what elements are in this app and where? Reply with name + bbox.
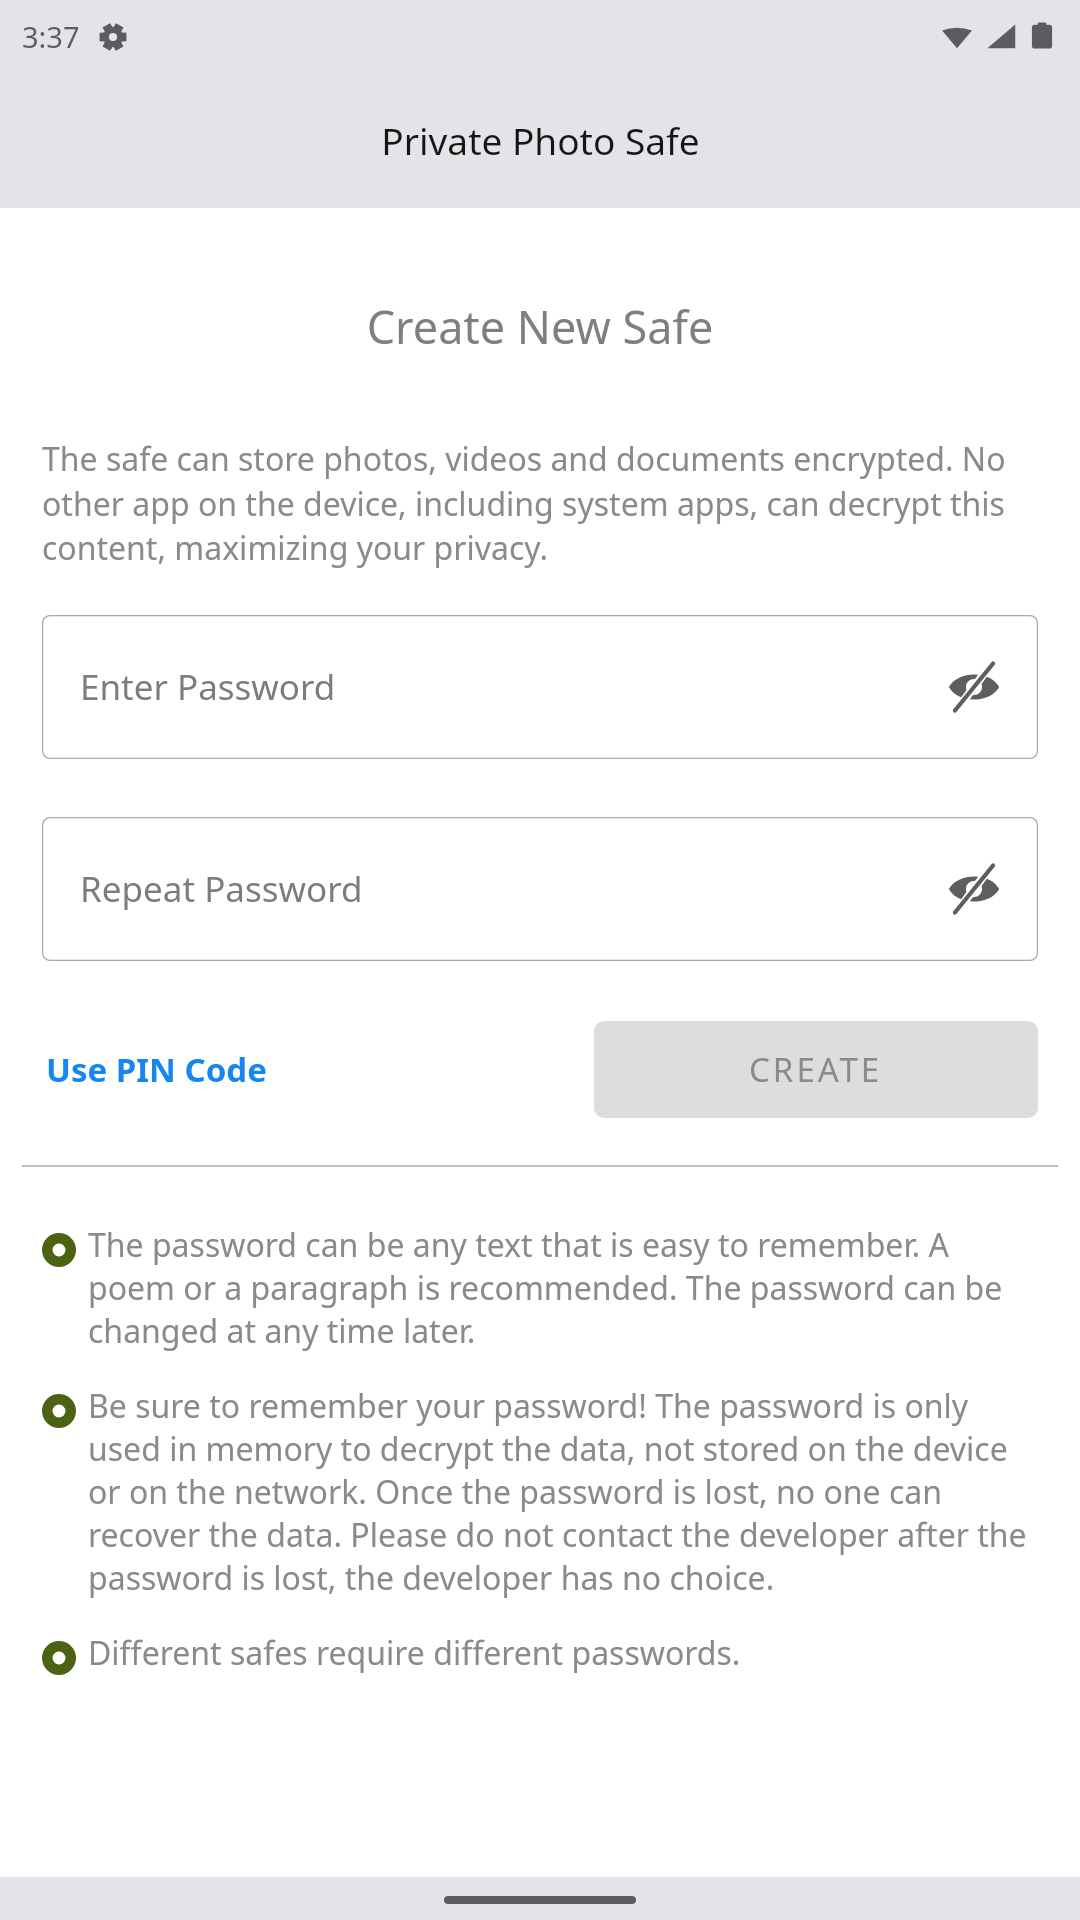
staticText: Repeat Password xyxy=(80,865,363,913)
button[interactable]: Use PIN Code xyxy=(42,1039,271,1100)
button[interactable]: Enter Password xyxy=(42,615,1038,759)
staticText: 3:37 xyxy=(22,17,80,56)
staticText: The safe can store photos, videos and do… xyxy=(42,437,1038,569)
staticText: CREATE xyxy=(749,1047,883,1092)
button[interactable]: Show password xyxy=(938,651,1010,723)
staticText: The password can be any text that is eas… xyxy=(88,1223,1044,1352)
staticText: Be sure to remember your password! The p… xyxy=(88,1384,1044,1599)
staticText: Use PIN Code xyxy=(46,1047,267,1092)
button[interactable]: Repeat Password xyxy=(42,817,1038,961)
staticText: Different safes require different passwo… xyxy=(88,1631,1044,1675)
button[interactable]: Show password xyxy=(938,853,1010,925)
staticText: Enter Password xyxy=(80,663,336,711)
button[interactable]: CREATE xyxy=(594,1021,1038,1118)
staticText: Private Photo Safe xyxy=(381,115,700,165)
staticText: Create New Safe xyxy=(0,296,1080,357)
